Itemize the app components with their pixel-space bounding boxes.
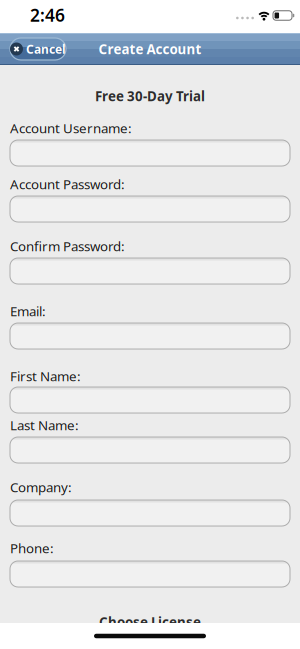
button[interactable]: Phone: bbox=[10, 561, 290, 587]
button[interactable]: Last Name: bbox=[10, 437, 290, 463]
button[interactable]: Cancel bbox=[10, 38, 66, 60]
button[interactable]: Account Password: bbox=[10, 196, 290, 222]
staticText: Account Password: bbox=[10, 175, 125, 193]
staticText: Choose License bbox=[99, 613, 201, 631]
staticText: Company: bbox=[10, 478, 72, 496]
staticText: Account Username: bbox=[10, 119, 132, 137]
staticText: Free 30-Day Trial bbox=[95, 87, 205, 105]
button[interactable]: First Name: bbox=[10, 387, 290, 413]
staticText: Last Name: bbox=[10, 416, 79, 434]
button[interactable]: Company: bbox=[10, 500, 290, 526]
staticText: First Name: bbox=[10, 367, 81, 385]
staticText: Create Account bbox=[98, 40, 201, 58]
button[interactable]: Account Username: bbox=[10, 140, 290, 166]
staticText: Phone: bbox=[10, 539, 54, 557]
button[interactable]: Confirm Password: bbox=[10, 258, 290, 284]
staticText: Email: bbox=[10, 302, 46, 320]
staticText: Confirm Password: bbox=[10, 237, 125, 255]
staticText: 2:46 bbox=[30, 3, 65, 26]
staticText: Cancel bbox=[26, 41, 66, 57]
button[interactable]: Email: bbox=[10, 323, 290, 349]
